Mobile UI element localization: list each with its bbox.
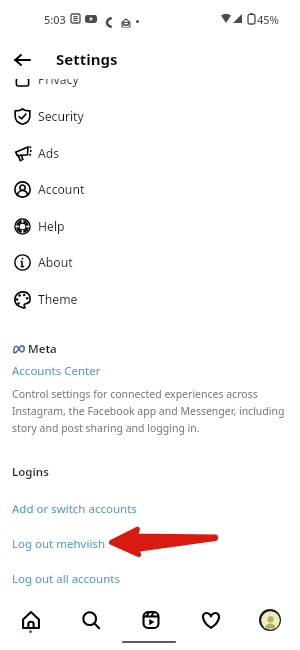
button[interactable]: Back — [10, 48, 34, 72]
button[interactable]: Profile — [259, 609, 281, 631]
staticText: Control settings for connected experienc… — [12, 387, 285, 435]
button[interactable]: Ads — [0, 135, 300, 171]
staticText: Security — [38, 108, 84, 125]
button[interactable]: Likes — [200, 609, 222, 631]
button[interactable]: Help — [0, 208, 300, 244]
button[interactable]: Log out mehviish — [0, 533, 300, 555]
button[interactable]: About — [0, 244, 300, 280]
button[interactable]: Account — [0, 171, 300, 207]
staticText: Log out all accounts — [12, 571, 120, 587]
staticText: Account — [38, 181, 85, 198]
staticText: 45% — [257, 12, 279, 27]
staticText: Log out mehviish — [12, 536, 105, 552]
button[interactable]: Log out all accounts — [0, 568, 300, 590]
button[interactable]: Accounts Center — [12, 363, 101, 379]
staticText: 5:03 — [44, 12, 66, 27]
button[interactable]: Privacy — [0, 61, 300, 97]
button[interactable]: Security — [0, 98, 300, 134]
button[interactable]: Add or switch accounts — [0, 498, 300, 520]
staticText: Logins — [12, 464, 49, 480]
button[interactable]: Home — [20, 609, 42, 631]
staticText: Help — [38, 218, 65, 235]
staticText: Meta — [28, 341, 57, 357]
staticText: Settings — [56, 49, 118, 69]
staticText: About — [38, 254, 73, 271]
staticText: Privacy — [38, 71, 79, 88]
button[interactable]: Search — [80, 609, 102, 631]
staticText: Accounts Center — [12, 363, 101, 379]
button[interactable]: Theme — [0, 281, 300, 317]
button[interactable]: Reels — [140, 609, 162, 631]
staticText: Add or switch accounts — [12, 501, 137, 517]
staticText: Theme — [38, 291, 78, 308]
staticText: Ads — [38, 145, 60, 162]
